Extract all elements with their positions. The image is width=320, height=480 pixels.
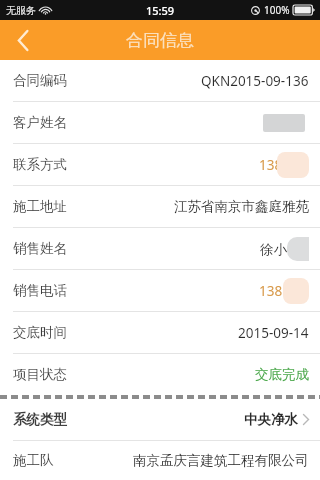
staticText: 合同信息	[126, 30, 194, 51]
button[interactable]: Back	[0, 20, 46, 60]
staticText: 15:59	[146, 3, 175, 18]
staticText: 合同编码	[13, 72, 67, 89]
staticText: 南京孟庆言建筑工程有限公司	[133, 452, 309, 469]
staticText: 销售姓名	[13, 240, 67, 257]
staticText: 施工队	[13, 452, 54, 469]
button[interactable]: 系统类型	[0, 399, 320, 440]
staticText: 系统类型	[13, 411, 67, 428]
staticText: 138133.	[259, 156, 309, 174]
staticText: 100%	[264, 3, 290, 17]
staticText: 项目状态	[13, 366, 67, 383]
staticText: 无服务	[6, 4, 36, 17]
staticText: 交底完成	[255, 366, 309, 383]
staticText: 徐小	[260, 241, 287, 258]
staticText: 2015-09-14	[238, 324, 309, 342]
staticText: 施工地址	[13, 198, 67, 215]
staticText: 客户姓名	[13, 114, 67, 131]
staticText: 交底时间	[13, 324, 67, 341]
staticText: 江苏省南京市鑫庭雅苑	[174, 198, 309, 215]
staticText: QKN2015-09-136	[201, 72, 309, 90]
staticText: 销售电话	[13, 282, 67, 299]
staticText: 138515:	[259, 282, 309, 300]
staticText: 联系方式	[13, 156, 67, 173]
staticText: 中央净水	[244, 411, 298, 428]
